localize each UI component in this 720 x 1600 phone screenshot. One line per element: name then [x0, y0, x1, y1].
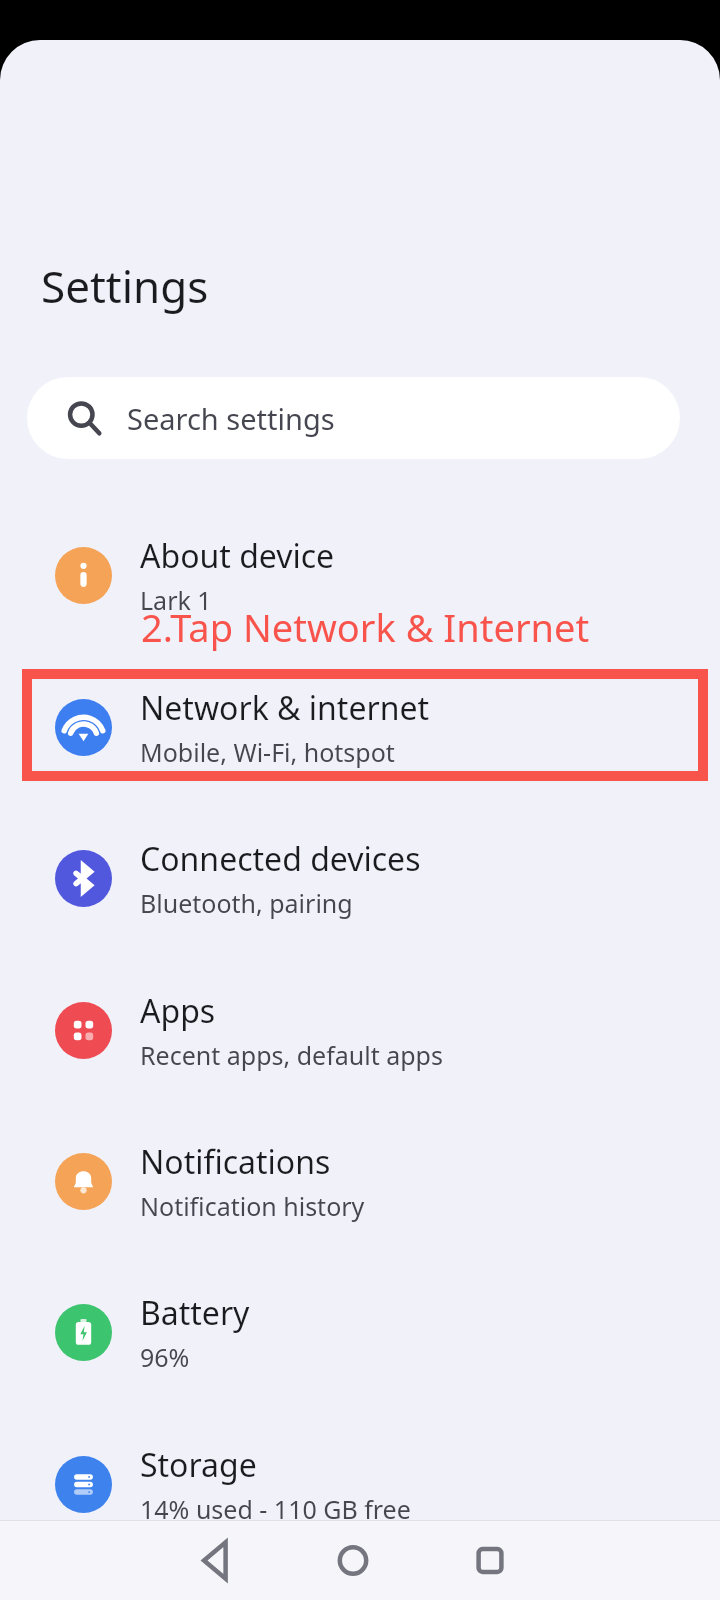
- staticText: Recent apps, default apps: [140, 1038, 443, 1072]
- staticText: Notification history: [140, 1189, 365, 1223]
- button[interactable]: Back: [186, 1521, 246, 1600]
- staticText: Mobile, Wi-Fi, hotspot: [140, 735, 395, 769]
- staticText: About device: [140, 534, 335, 578]
- staticText: Network & internet: [140, 686, 430, 730]
- staticText: 96%: [140, 1340, 190, 1374]
- staticText: Search settings: [127, 399, 335, 438]
- button[interactable]: Home: [323, 1521, 383, 1600]
- staticText: Bluetooth, pairing: [140, 886, 353, 920]
- button[interactable]: Network & internet: [0, 671, 720, 783]
- staticText: Connected devices: [140, 837, 421, 881]
- staticText: Settings: [41, 256, 209, 316]
- button[interactable]: [22, 669, 708, 781]
- button[interactable]: Connected devices: [0, 822, 720, 934]
- staticText: Battery: [140, 1291, 250, 1335]
- staticText: 14% used - 110 GB free: [140, 1492, 411, 1526]
- button[interactable]: Apps: [0, 974, 720, 1086]
- button[interactable]: Battery: [0, 1276, 720, 1388]
- staticText: Storage: [140, 1443, 257, 1487]
- button[interactable]: About device: [0, 519, 720, 631]
- staticText: Lark 1: [140, 583, 212, 617]
- staticText: Apps: [140, 989, 216, 1033]
- button[interactable]: Notifications: [0, 1125, 720, 1237]
- button[interactable]: Storage: [0, 1428, 720, 1540]
- staticText: Notifications: [140, 1140, 331, 1184]
- staticText: 2.Tap Network & Internet: [141, 601, 590, 653]
- button[interactable]: Search settings: [27, 377, 680, 459]
- button[interactable]: Recents: [460, 1521, 520, 1600]
